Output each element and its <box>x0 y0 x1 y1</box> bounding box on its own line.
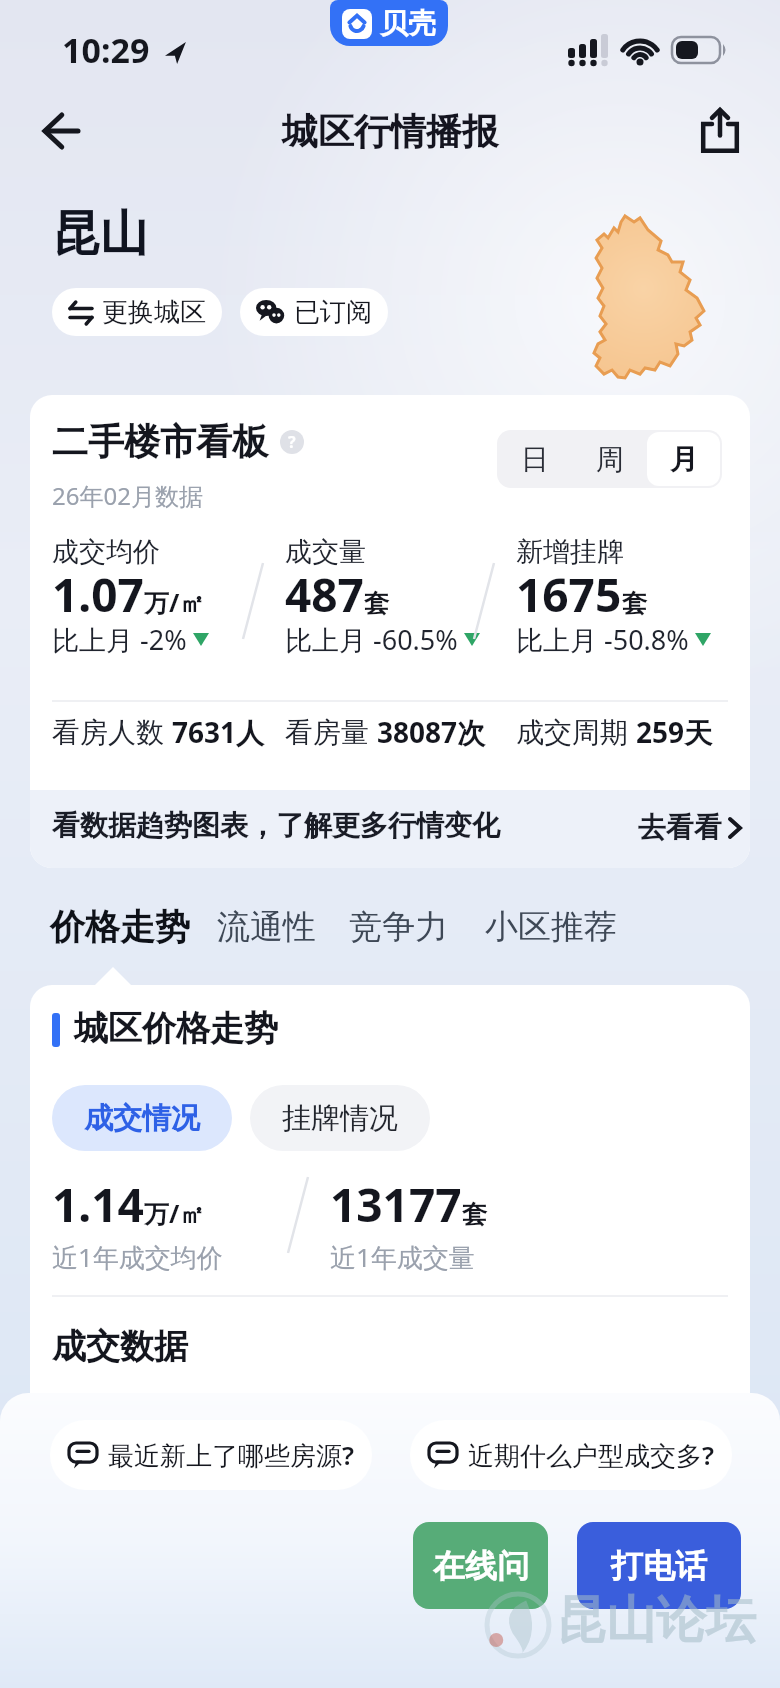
staticText: 小区推荐 <box>485 906 617 948</box>
staticText: 日 <box>521 442 549 477</box>
button[interactable]: 流通性 <box>217 906 316 948</box>
button[interactable]: 更换城区 <box>52 288 222 336</box>
staticText: 近1年成交均价 <box>52 1239 223 1275</box>
staticText: 成交情况 <box>84 1100 200 1137</box>
staticText: 价格走势 <box>50 905 190 949</box>
staticText: 10:29 <box>62 27 150 73</box>
staticText: 套 <box>462 1199 487 1230</box>
staticText: 7631人 <box>172 713 265 751</box>
staticText: 万/㎡ <box>144 1196 205 1230</box>
button[interactable]: 贝壳 <box>330 0 448 46</box>
button[interactable] <box>690 101 750 161</box>
staticText: 月 <box>670 442 698 477</box>
button[interactable]: 日 <box>497 430 572 488</box>
button[interactable]: 价格走势 <box>50 905 190 949</box>
staticText: 13177 <box>330 1173 462 1236</box>
staticText: 已订阅 <box>294 296 372 329</box>
staticText: 成交均价 <box>52 535 160 569</box>
button[interactable]: 在线问 <box>413 1522 548 1609</box>
button[interactable]: 看数据趋势图表，了解更多行情变化 <box>30 790 750 868</box>
staticText: 看房量 <box>285 715 369 750</box>
button[interactable]: 成交情况 <box>52 1085 232 1151</box>
staticText: 487 <box>285 563 364 626</box>
button[interactable]: 周 <box>572 430 647 488</box>
staticText: 比上月 -2% <box>52 621 187 658</box>
button[interactable]: 最近新上了哪些房源? <box>50 1420 372 1490</box>
button[interactable]: 小区推荐 <box>485 906 617 948</box>
staticText: 新增挂牌 <box>516 535 624 569</box>
staticText: 挂牌情况 <box>282 1100 398 1137</box>
staticText: 城区行情播报 <box>282 109 498 154</box>
staticText: 近1年成交量 <box>330 1239 475 1275</box>
button[interactable]: 竞争力 <box>349 906 448 948</box>
button[interactable]: 月 <box>647 432 720 486</box>
staticText: 比上月 -60.5% <box>285 621 458 658</box>
staticText: 成交量 <box>285 535 366 569</box>
staticText: 套 <box>622 588 647 619</box>
staticText: 周 <box>596 442 624 477</box>
staticText: 在线问 <box>433 1546 529 1586</box>
staticText: 比上月 -50.8% <box>516 621 689 658</box>
staticText: 更换城区 <box>102 296 206 329</box>
button[interactable]: 挂牌情况 <box>250 1085 430 1151</box>
staticText: 打电话 <box>611 1546 707 1586</box>
button[interactable]: 打电话 <box>577 1522 741 1609</box>
staticText: 成交周期 <box>516 715 628 750</box>
staticText: 昆山 <box>52 204 148 264</box>
staticText: 最近新上了哪些房源? <box>108 1437 354 1473</box>
staticText: 看房人数 <box>52 715 164 750</box>
button[interactable]: 已订阅 <box>240 288 388 336</box>
staticText: 万/㎡ <box>144 585 205 619</box>
button[interactable]: 近期什么户型成交多? <box>410 1420 732 1490</box>
button[interactable] <box>30 103 90 159</box>
staticText: 流通性 <box>217 906 316 948</box>
staticText: ? <box>288 431 296 453</box>
staticText: 259天 <box>636 713 713 751</box>
staticText: 1.14 <box>52 1173 144 1236</box>
staticText: 去看看 <box>638 810 722 845</box>
staticText: 38087次 <box>377 713 486 751</box>
staticText: 套 <box>364 588 389 619</box>
staticText: 26年02月数据 <box>52 479 203 512</box>
staticText: 二手楼市看板 <box>52 419 268 464</box>
staticText: 昆山论坛 <box>556 1589 756 1652</box>
staticText: 1675 <box>516 563 622 626</box>
staticText: 1.07 <box>52 563 144 626</box>
staticText: 竞争力 <box>349 906 448 948</box>
staticText: 看数据趋势图表，了解更多行情变化 <box>52 808 500 843</box>
staticText: 近期什么户型成交多? <box>468 1437 714 1473</box>
staticText: 成交数据 <box>52 1325 188 1368</box>
staticText: 城区价格走势 <box>74 1007 278 1050</box>
staticText: 贝壳 <box>380 6 436 41</box>
